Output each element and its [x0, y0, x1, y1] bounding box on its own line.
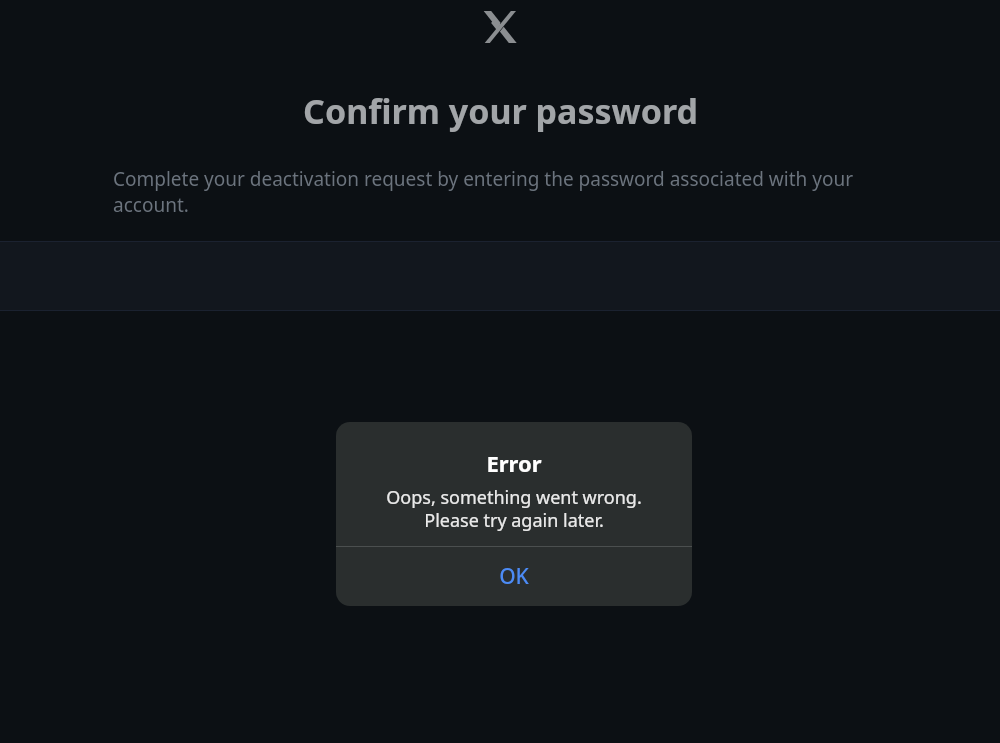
staticText: Confirm your password: [303, 88, 698, 134]
staticText: Error: [486, 448, 542, 478]
other: X: [483, 10, 517, 44]
button[interactable]: OK: [336, 547, 692, 606]
staticText: Oops, something went wrong. Please try a…: [361, 485, 667, 532]
staticText: OK: [499, 562, 529, 591]
staticText: Complete your deactivation request by en…: [113, 166, 880, 218]
